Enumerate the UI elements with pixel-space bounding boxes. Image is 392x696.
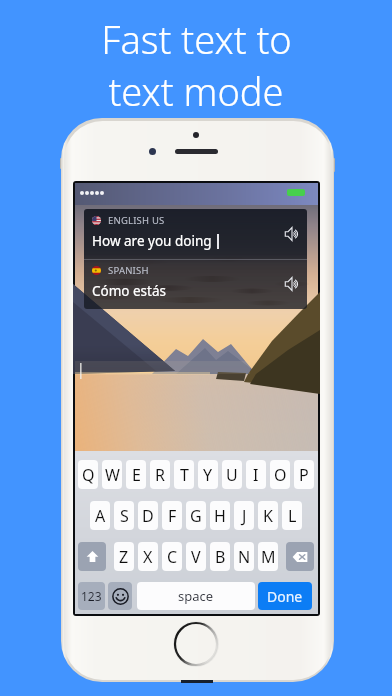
button[interactable]: G: [186, 501, 206, 530]
staticText: K: [263, 505, 273, 527]
staticText: Z: [119, 546, 129, 568]
staticText: J: [242, 505, 247, 527]
button[interactable]: Y: [198, 460, 218, 489]
staticText: E: [132, 464, 141, 486]
button[interactable]: N: [234, 542, 254, 571]
button[interactable]: Done: [258, 582, 312, 610]
staticText: I: [253, 464, 259, 486]
button[interactable]: D: [138, 501, 158, 530]
staticText: F: [168, 505, 177, 527]
button[interactable]: I: [246, 460, 266, 489]
button[interactable]: ENGLISH US: [84, 209, 307, 259]
button[interactable]: O: [270, 460, 290, 489]
staticText: P: [299, 464, 309, 486]
button[interactable]: Emoji: [108, 582, 132, 610]
button[interactable]: Speak: [285, 227, 299, 241]
staticText: Cómo estás: [92, 282, 166, 300]
button[interactable]: U: [222, 460, 242, 489]
staticText: space: [178, 587, 214, 605]
button[interactable]: X: [138, 542, 158, 571]
button[interactable]: C: [162, 542, 182, 571]
button[interactable]: Shift: [78, 542, 106, 571]
staticText: M: [261, 546, 276, 568]
staticText: T: [180, 464, 189, 486]
staticText: C: [167, 546, 178, 568]
button[interactable]: Backspace: [286, 542, 314, 571]
button[interactable]: 123: [78, 582, 105, 610]
staticText: Y: [203, 464, 213, 486]
staticText: 123: [81, 588, 102, 604]
staticText: How are you doing: [92, 232, 212, 250]
staticText: Done: [267, 587, 303, 606]
button[interactable]: B: [210, 542, 230, 571]
button[interactable]: Speak: [285, 277, 299, 291]
button[interactable]: V: [186, 542, 206, 571]
staticText: SPANISH: [108, 264, 149, 277]
staticText: B: [215, 546, 226, 568]
staticText: L: [288, 505, 297, 527]
button[interactable]: E: [126, 460, 146, 489]
button[interactable]: H: [210, 501, 230, 530]
staticText: text mode: [108, 65, 284, 117]
staticText: S: [120, 505, 129, 527]
button[interactable]: K: [258, 501, 278, 530]
button[interactable]: R: [150, 460, 170, 489]
button[interactable]: J: [234, 501, 254, 530]
button[interactable]: Home: [173, 621, 219, 667]
button[interactable]: T: [174, 460, 194, 489]
staticText: O: [274, 464, 287, 486]
staticText: H: [214, 505, 226, 527]
staticText: R: [155, 464, 165, 486]
staticText: ENGLISH US: [108, 214, 165, 227]
staticText: U: [226, 464, 238, 486]
staticText: X: [143, 546, 153, 568]
button[interactable]: P: [294, 460, 314, 489]
button[interactable]: W: [102, 460, 122, 489]
staticText: Fast text to: [101, 13, 292, 65]
button[interactable]: M: [258, 542, 278, 571]
button[interactable]: A: [90, 501, 110, 530]
button[interactable]: S: [114, 501, 134, 530]
button[interactable]: Z: [114, 542, 134, 571]
button[interactable]: SPANISH: [84, 259, 307, 309]
staticText: D: [142, 505, 154, 527]
staticText: W: [105, 464, 120, 486]
button[interactable]: L: [282, 501, 302, 530]
staticText: Q: [82, 464, 95, 486]
staticText: N: [238, 546, 251, 568]
button[interactable]: space: [137, 582, 255, 610]
staticText: A: [95, 505, 106, 527]
button[interactable]: F: [162, 501, 182, 530]
staticText: G: [190, 505, 202, 527]
staticText: V: [191, 546, 201, 568]
button[interactable]: Q: [78, 460, 98, 489]
